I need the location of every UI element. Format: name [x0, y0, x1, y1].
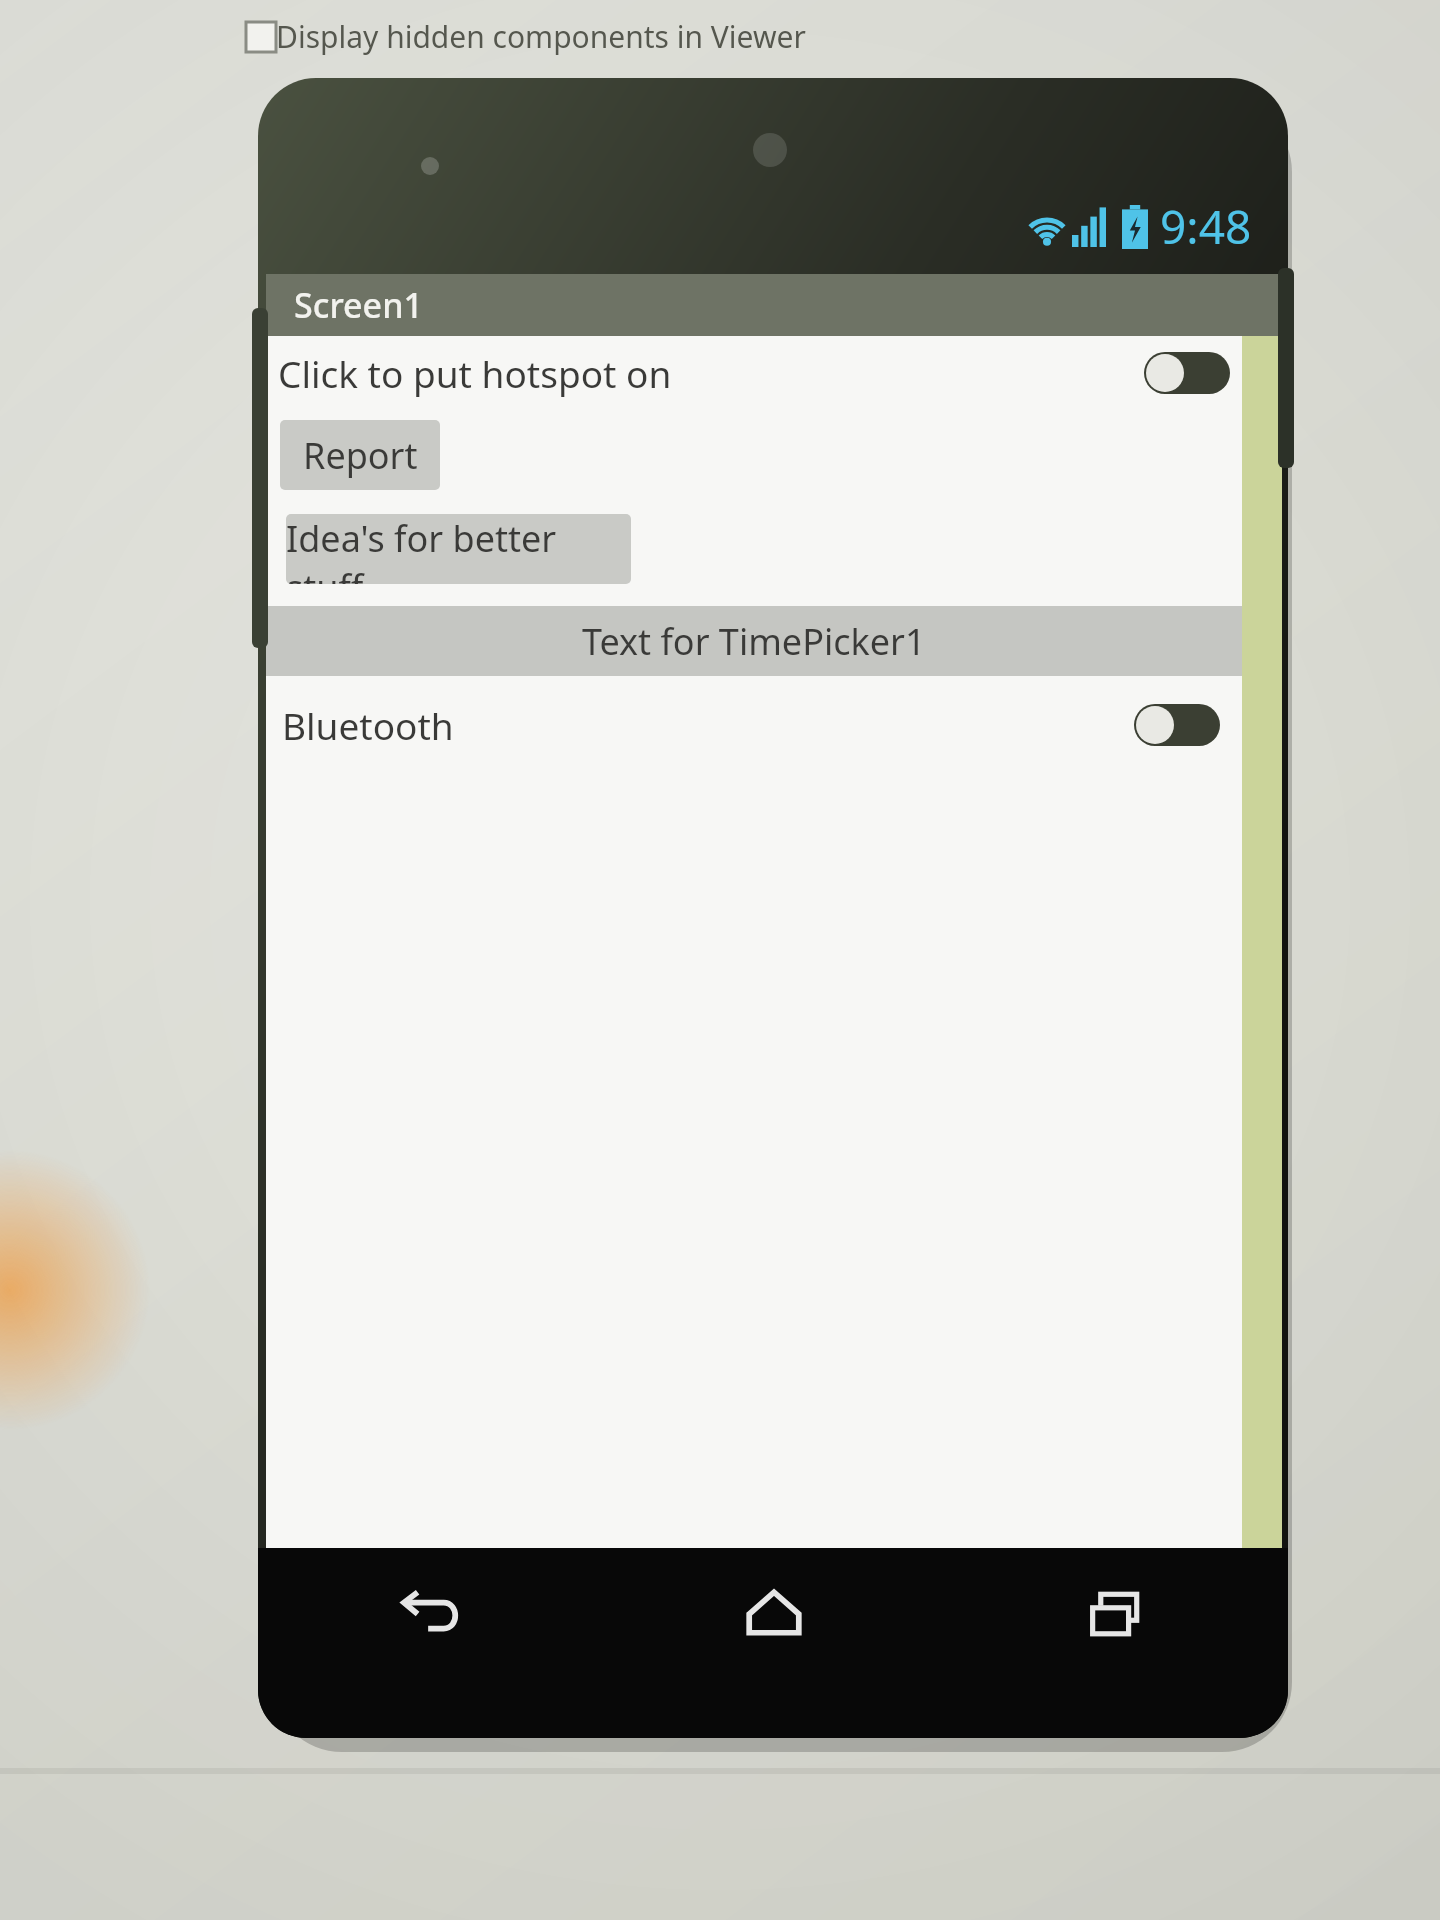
staticText: Bluetooth — [282, 700, 454, 750]
staticText: Screen1 — [294, 282, 423, 328]
staticText: Idea's for better stuff — [286, 514, 631, 584]
button[interactable]: Display hidden components in Viewer — [246, 16, 806, 57]
button[interactable]: Toggle — [1134, 704, 1220, 746]
staticText: Click to put hotspot on — [278, 348, 672, 398]
button[interactable]: Text for TimePicker1 — [266, 606, 1242, 676]
staticText: Text for TimePicker1 — [582, 617, 926, 666]
staticText: 9:48 — [1160, 195, 1252, 258]
button[interactable]: Click to put hotspot on — [266, 336, 1242, 410]
button[interactable]: Report — [280, 420, 440, 490]
button[interactable]: Idea's for better stuff — [286, 514, 631, 584]
button[interactable]: Recents — [945, 1548, 1288, 1678]
button[interactable]: Home — [602, 1548, 945, 1678]
button[interactable]: Bluetooth — [266, 690, 1242, 760]
button[interactable]: Toggle — [1144, 352, 1230, 394]
staticText: Report — [303, 431, 418, 480]
staticText: Display hidden components in Viewer — [276, 16, 806, 57]
button[interactable]: Back — [258, 1548, 602, 1678]
